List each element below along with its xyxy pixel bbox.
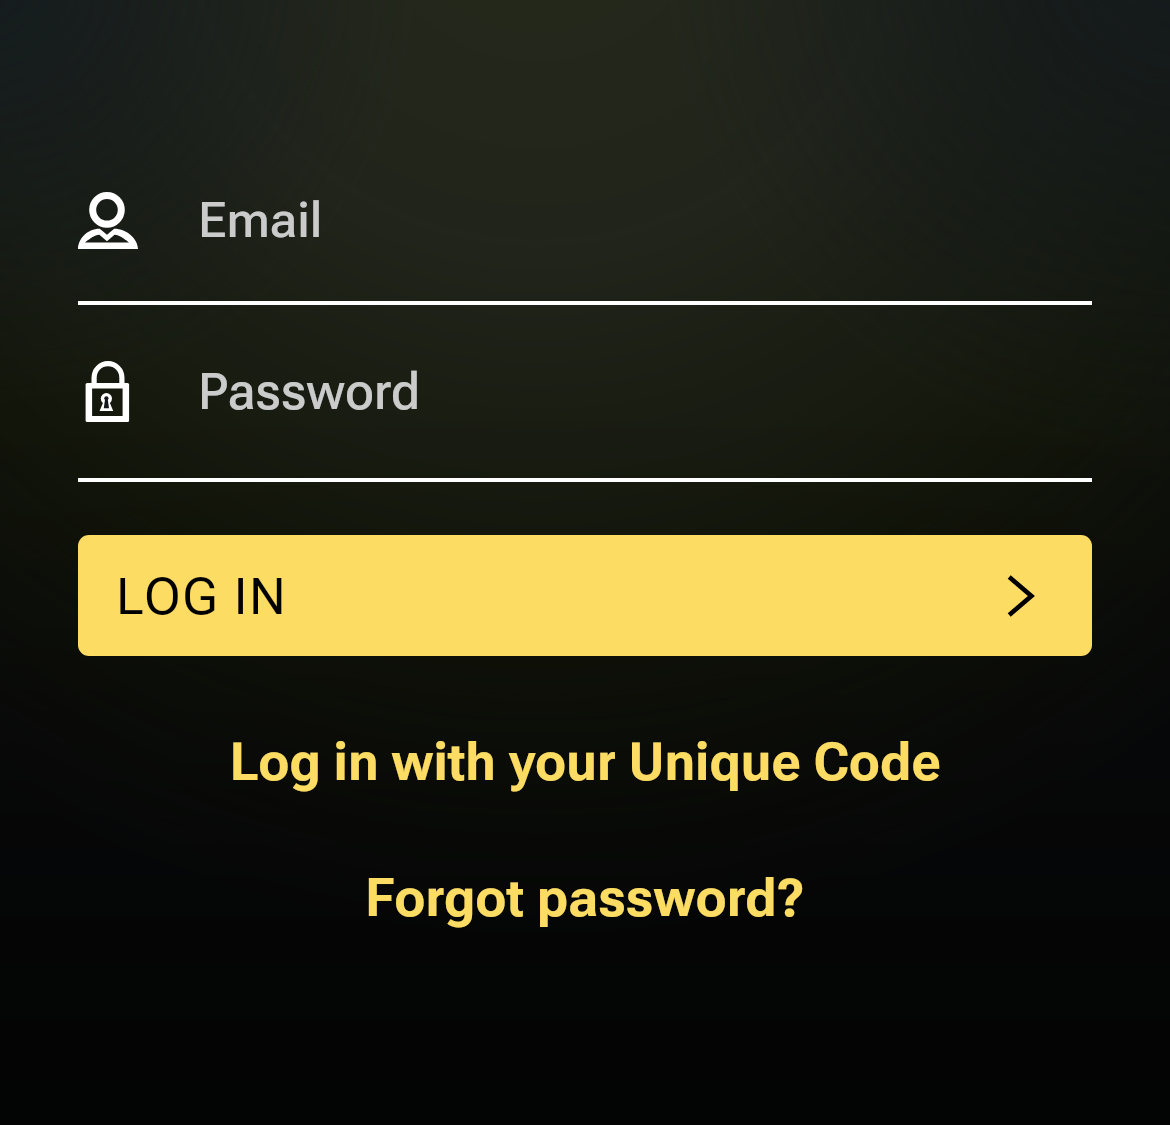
other: Email [78, 192, 138, 249]
staticText: Forgot password? [365, 868, 805, 929]
button[interactable]: LOG IN [78, 535, 1092, 656]
other: Password [84, 360, 132, 423]
staticText: Log in with your Unique Code [229, 732, 941, 793]
button[interactable]: Password [78, 345, 1092, 482]
staticText: Email [198, 191, 323, 249]
button[interactable]: Email [78, 170, 1092, 305]
button[interactable]: Log in with your Unique Code [0, 729, 1170, 795]
staticText: Password [198, 363, 421, 422]
button[interactable]: Forgot password? [0, 865, 1170, 931]
staticText: LOG IN [116, 566, 288, 626]
